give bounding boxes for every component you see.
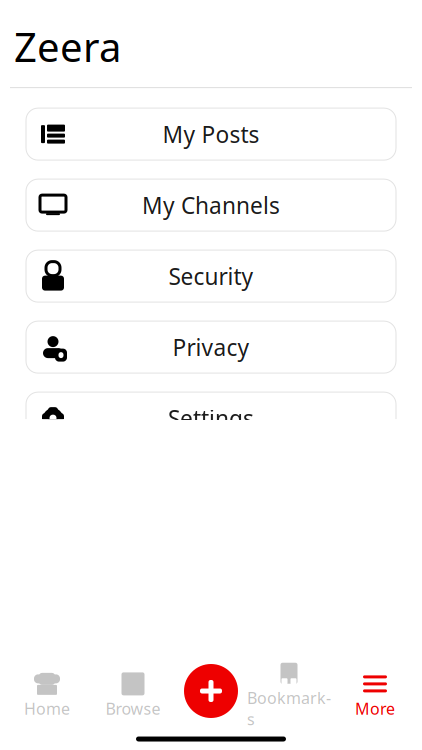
button[interactable]: Security <box>26 250 396 302</box>
staticText: My Channels <box>142 190 280 220</box>
button[interactable]: More <box>332 672 418 720</box>
button[interactable]: Browse <box>90 672 176 720</box>
button[interactable]: Settings <box>26 392 396 444</box>
staticText: Browse <box>105 698 160 719</box>
button[interactable]: My Channels <box>26 179 396 231</box>
staticText: Bookmarks <box>247 687 331 730</box>
staticText: My Posts <box>162 119 259 149</box>
staticText: Zeera <box>14 20 121 73</box>
staticText: More <box>355 698 395 719</box>
button[interactable]: Create <box>184 664 238 718</box>
staticText: Home <box>24 698 70 719</box>
button[interactable]: Bookmarks <box>246 672 332 720</box>
button[interactable]: Privacy <box>26 321 396 373</box>
button[interactable]: Home <box>4 672 90 720</box>
button[interactable]: My Posts <box>26 108 396 160</box>
staticText: Security <box>168 261 253 291</box>
staticText: Privacy <box>172 332 249 362</box>
staticText: Settings <box>168 403 254 433</box>
